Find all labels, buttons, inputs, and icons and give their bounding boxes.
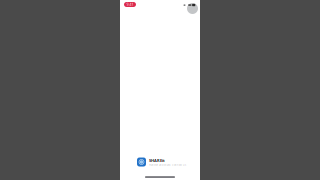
button[interactable]: SHAREit xyxy=(137,157,183,167)
staticText: Transfer and share. Connect us xyxy=(149,163,186,166)
staticText: SHAREit xyxy=(149,158,165,163)
button[interactable]: Screen recording, 9:41 xyxy=(124,2,136,7)
button[interactable]: Status xyxy=(187,3,198,14)
staticText: 9:41 xyxy=(126,2,133,7)
